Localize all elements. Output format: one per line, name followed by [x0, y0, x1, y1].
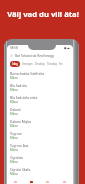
- button[interactable]: Togrcse Ava: [7, 141, 73, 153]
- staticText: Mitzu: [10, 124, 18, 128]
- button[interactable]: Togrcse: [7, 129, 73, 141]
- button[interactable]: Onsdag: [35, 62, 45, 66]
- button[interactable]: Sök: [39, 179, 56, 184]
- staticText: Imorgon: [22, 62, 33, 66]
- staticText: Togrcse Ava: [10, 143, 29, 147]
- button[interactable]: Dalami: [7, 105, 73, 117]
- staticText: Mitzu: [10, 136, 18, 140]
- staticText: Togrcse: [10, 131, 22, 135]
- button[interactable]: Fre: [59, 62, 63, 66]
- button[interactable]: Dalami Majka: [7, 117, 73, 129]
- staticText: Dalami Majka: [10, 119, 32, 123]
- staticText: Bla Sadubila nista: [10, 95, 38, 99]
- staticText: 08:58: [10, 46, 18, 50]
- staticText: Bar Schaecisla Restforagg: [15, 54, 54, 58]
- staticText: Onsdag: [35, 62, 45, 66]
- button[interactable]: Torsdag: [47, 62, 57, 66]
- button[interactable]: Idag: [10, 61, 20, 67]
- button[interactable]: Bla Saduliu: [7, 81, 73, 93]
- staticText: Mitzu: [10, 160, 18, 164]
- staticText: Ogrisla Skafa: [10, 167, 31, 171]
- button[interactable]: Konto: [56, 179, 73, 184]
- staticText: Bortschaeba Sättfrska: [10, 71, 45, 75]
- staticText: Mitzu: [10, 88, 18, 92]
- button[interactable]: Bla Sadubila nista: [7, 93, 73, 105]
- staticText: ● ▬: [64, 46, 70, 50]
- button[interactable]: Bar Schaecisla Restforagg: [7, 51, 73, 60]
- button[interactable]: Meny: [7, 179, 23, 184]
- staticText: Bla Saduliu: [10, 83, 28, 87]
- staticText: Idag: [12, 62, 18, 66]
- button[interactable]: Imorgon: [22, 62, 33, 66]
- staticText: Mitzu: [10, 172, 18, 176]
- staticText: Torsdag: [47, 62, 57, 66]
- button[interactable]: Hem: [23, 179, 39, 184]
- staticText: Fre: [59, 62, 63, 66]
- staticText: Mitzu: [10, 76, 18, 80]
- staticText: Mitzu: [10, 112, 18, 116]
- button[interactable]: Bortschaeba Sättfrska: [7, 69, 73, 81]
- staticText: Ogrislaa: [10, 155, 23, 159]
- staticText: Dalami: [10, 107, 21, 111]
- staticText: Välj vad du vill äta!: [7, 9, 79, 19]
- button[interactable]: Ogrisla Skafa: [7, 165, 73, 177]
- button[interactable]: Ogrislaa: [7, 153, 73, 165]
- staticText: Mitzu: [10, 100, 18, 104]
- staticText: Mitzu: [10, 148, 18, 152]
